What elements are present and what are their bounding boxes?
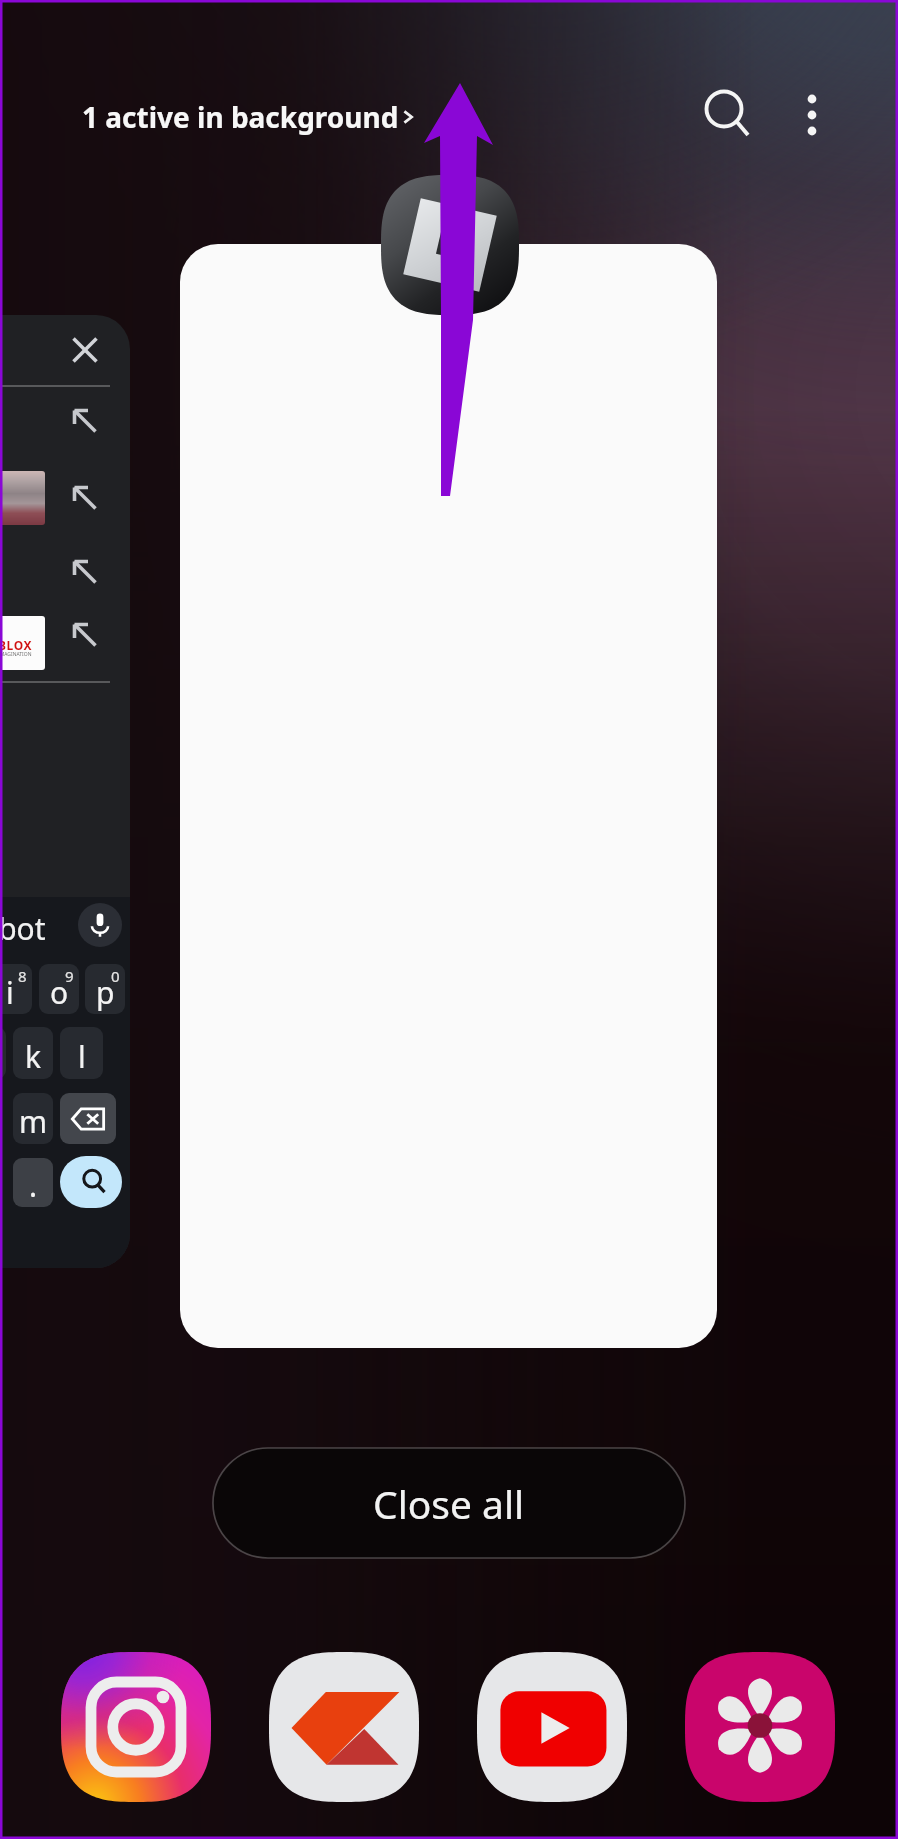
button[interactable]: Close xyxy=(0,315,130,1268)
button[interactable]: More options xyxy=(774,71,850,147)
button[interactable]: Gallery xyxy=(685,1652,835,1802)
staticText: i xyxy=(6,972,14,1013)
button[interactable]: m xyxy=(13,1093,53,1144)
button[interactable]: Search xyxy=(60,1156,122,1208)
button[interactable]: Search xyxy=(686,71,762,147)
button[interactable]: k xyxy=(13,1027,53,1079)
button[interactable]: o xyxy=(39,964,79,1014)
button[interactable]: Close all xyxy=(213,1448,685,1558)
button[interactable]: Search suggestion 3 xyxy=(0,539,113,605)
button[interactable]: . xyxy=(13,1158,53,1207)
button[interactable]: Search suggestion 1 xyxy=(0,388,113,454)
staticText: 9 xyxy=(65,966,74,986)
staticText: p xyxy=(96,972,115,1013)
button[interactable] xyxy=(0,1027,6,1079)
button[interactable]: p xyxy=(85,964,125,1014)
staticText: BLOX xyxy=(0,637,33,653)
staticText: 0 xyxy=(111,966,120,986)
staticText: obot xyxy=(0,908,46,949)
button[interactable]: Backspace xyxy=(60,1093,116,1144)
staticText: Close all xyxy=(373,1477,525,1530)
staticText: o xyxy=(50,972,69,1013)
staticText: IMAGINATION xyxy=(0,651,32,658)
staticText: . xyxy=(29,1165,38,1206)
staticText: l xyxy=(78,1036,86,1077)
button[interactable]: Kakao xyxy=(269,1652,419,1802)
button[interactable]: Voice input xyxy=(78,903,122,947)
staticText: m xyxy=(19,1101,48,1142)
button[interactable]: YouTube xyxy=(477,1652,627,1802)
button[interactable]: 1 active in background xyxy=(72,88,427,146)
button[interactable]: Search suggestion 2 xyxy=(0,465,113,531)
button[interactable]: i xyxy=(0,964,32,1014)
button[interactable] xyxy=(180,244,717,1348)
button[interactable]: Close xyxy=(57,322,113,378)
staticText: 8 xyxy=(18,966,27,986)
button[interactable]: l xyxy=(60,1027,103,1079)
staticText: 1 active in background xyxy=(82,98,399,136)
button[interactable]: Search suggestion 4 xyxy=(0,602,113,668)
staticText: k xyxy=(25,1036,42,1077)
button[interactable]: Instagram xyxy=(61,1652,211,1802)
